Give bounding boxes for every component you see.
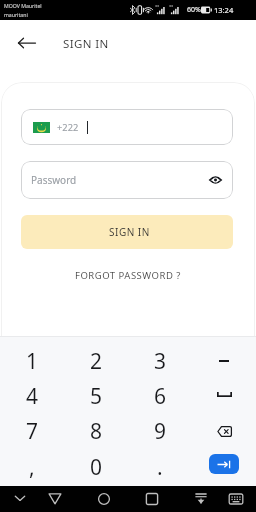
button[interactable]: Enter <box>192 449 256 485</box>
staticText: SIGN IN <box>63 36 109 52</box>
staticText: 5 <box>90 382 103 411</box>
staticText: 3 <box>154 347 167 376</box>
button[interactable]: Hide keyboard <box>6 486 34 512</box>
button[interactable]: 0 <box>64 449 128 485</box>
button[interactable]: Show password <box>205 170 225 190</box>
staticText: 0 <box>90 453 103 482</box>
button[interactable]: 6 <box>128 378 192 414</box>
button[interactable]: Recents <box>138 486 166 512</box>
staticText: 9 <box>154 417 167 446</box>
button[interactable]: 8 <box>64 413 128 449</box>
button[interactable]: Change keyboard <box>222 486 250 512</box>
staticText: 8 <box>90 417 103 446</box>
button[interactable]: 9 <box>128 413 192 449</box>
staticText: 6 <box>154 382 167 411</box>
staticText: MOOV Mauritel <box>4 2 42 9</box>
staticText: FORGOT PASSWORD ? <box>75 269 181 282</box>
button[interactable]: Back <box>41 486 69 512</box>
staticText: . <box>157 453 163 482</box>
button[interactable]: Download <box>187 486 215 512</box>
staticText: 4 <box>26 382 39 411</box>
staticText: mauritani <box>4 11 28 18</box>
button[interactable]: 5 <box>64 378 128 414</box>
staticText: 13:24 <box>214 5 234 15</box>
button[interactable]: 2 <box>64 343 128 379</box>
button[interactable]: . <box>128 449 192 485</box>
button[interactable]: Dash <box>192 343 256 379</box>
button[interactable]: Backspace <box>192 413 256 449</box>
staticText: 60% <box>187 5 201 15</box>
staticText: 7 <box>26 417 39 446</box>
staticText: , <box>29 453 35 482</box>
staticText: 1 <box>26 347 39 376</box>
button[interactable]: 7 <box>0 413 64 449</box>
staticText: Password <box>31 173 77 187</box>
staticText: +222 <box>57 121 79 134</box>
button[interactable]: Home <box>90 486 118 512</box>
button[interactable]: 4 <box>0 378 64 414</box>
staticText: 2 <box>90 347 103 376</box>
button[interactable]: 3 <box>128 343 192 379</box>
button[interactable]: SIGN IN <box>21 215 233 249</box>
button[interactable]: 1 <box>0 343 64 379</box>
button[interactable]: , <box>0 449 64 485</box>
button[interactable]: +222 <box>21 109 233 145</box>
button[interactable]: Password <box>21 161 233 199</box>
button[interactable]: Space <box>192 378 256 414</box>
button[interactable]: Back <box>11 27 43 59</box>
button[interactable]: FORGOT PASSWORD ? <box>67 265 189 286</box>
staticText: SIGN IN <box>109 225 150 239</box>
